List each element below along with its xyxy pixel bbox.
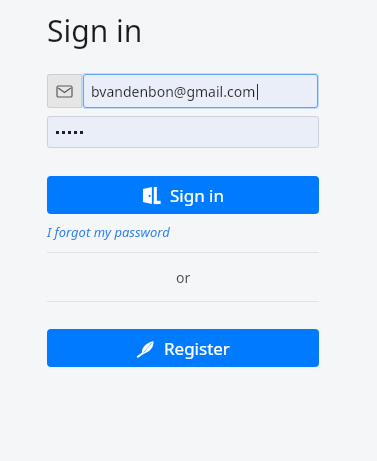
- other: Sign in: [142, 186, 161, 205]
- staticText: Register: [164, 337, 230, 360]
- button[interactable]: [47, 116, 319, 148]
- staticText: I forgot my password: [47, 223, 170, 241]
- staticText: Sign in: [170, 184, 224, 207]
- button[interactable]: Email: [47, 73, 319, 109]
- button[interactable]: Register: [47, 329, 319, 367]
- staticText: or: [176, 268, 191, 287]
- button[interactable]: I forgot my password: [47, 223, 170, 241]
- other: Register: [136, 339, 155, 358]
- other: Email: [57, 86, 72, 97]
- button[interactable]: Sign in: [47, 176, 319, 214]
- staticText: bvandenbon@gmail.com: [91, 82, 256, 101]
- staticText: Sign in: [47, 10, 143, 51]
